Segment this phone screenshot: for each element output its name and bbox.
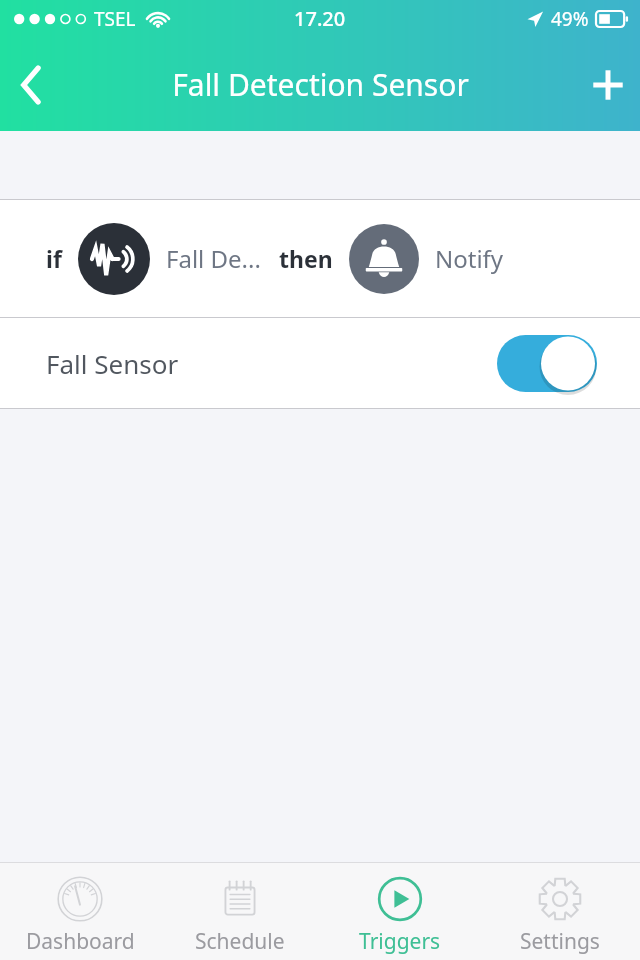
button[interactable]: Settings <box>480 863 640 960</box>
button[interactable]: Fall Sensor toggle <box>497 335 597 392</box>
staticText: 17.20 <box>294 5 346 32</box>
staticText: Triggers <box>359 927 441 956</box>
staticText: then <box>279 243 333 274</box>
staticText: 49% <box>551 6 589 32</box>
staticText: Fall De... <box>166 242 261 275</box>
button[interactable]: if <box>0 200 640 317</box>
button[interactable]: Add <box>576 53 640 117</box>
button[interactable]: Back <box>0 53 64 117</box>
staticText: Fall Detection Sensor <box>172 64 469 105</box>
button[interactable]: Fall Sensor <box>0 318 640 408</box>
staticText: Dashboard <box>26 927 135 956</box>
staticText: Fall Sensor <box>46 346 179 381</box>
staticText: Settings <box>520 927 600 956</box>
staticText: Schedule <box>195 927 285 956</box>
button[interactable]: Triggers <box>320 863 480 960</box>
button[interactable]: Schedule <box>160 863 320 960</box>
staticText: if <box>46 243 62 274</box>
button[interactable]: Dashboard <box>0 863 160 960</box>
staticText: Notify <box>435 242 504 275</box>
staticText: TSEL <box>94 6 136 32</box>
